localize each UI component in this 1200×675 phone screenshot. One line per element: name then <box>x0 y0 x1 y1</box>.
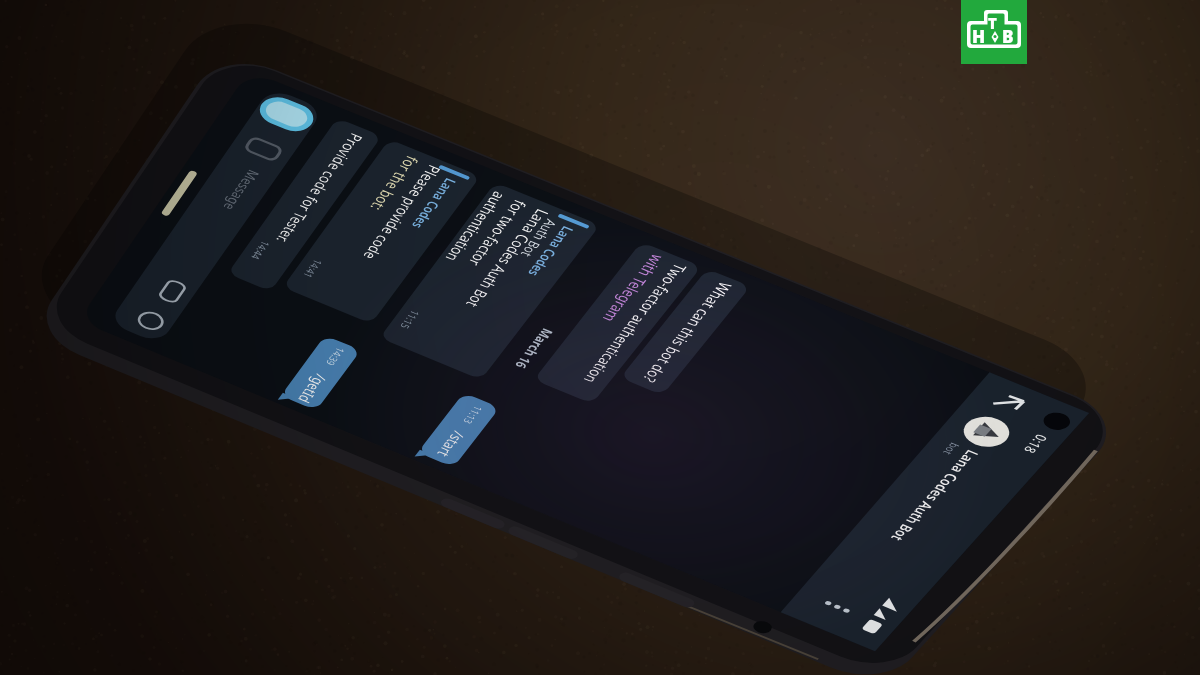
button[interactable]: Phone showing a Telegram chat with Lana … <box>0 0 1200 675</box>
